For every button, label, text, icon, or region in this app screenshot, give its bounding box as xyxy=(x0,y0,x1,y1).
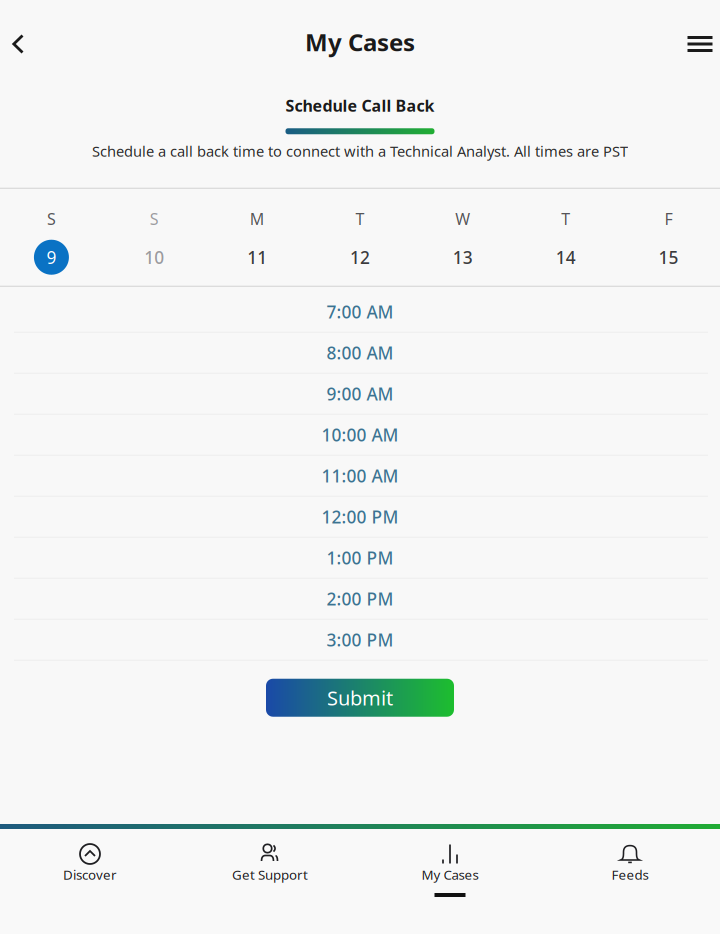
button[interactable]: Menu xyxy=(680,20,720,68)
staticText: 10:00 AM xyxy=(321,423,398,446)
button[interactable]: Back xyxy=(0,20,37,68)
button[interactable]: 1:00 PM xyxy=(0,537,720,578)
staticText: 11 xyxy=(247,246,267,269)
staticText: T xyxy=(561,208,570,229)
staticText: Feeds xyxy=(611,866,648,883)
staticText: 11:00 AM xyxy=(321,464,398,487)
staticText: W xyxy=(455,208,470,229)
staticText: My Cases xyxy=(305,26,415,58)
staticText: 9 xyxy=(46,246,56,269)
button[interactable]: T xyxy=(309,189,411,286)
staticText: Get Support xyxy=(232,866,308,883)
staticText: 8:00 AM xyxy=(326,341,393,364)
button[interactable]: 11:00 AM xyxy=(0,455,720,496)
staticText: 9:00 AM xyxy=(326,382,393,405)
button[interactable]: 12:00 PM xyxy=(0,496,720,537)
button[interactable]: Submit xyxy=(266,679,454,717)
staticText: M xyxy=(250,208,265,229)
button[interactable]: 2:00 PM xyxy=(0,578,720,619)
button[interactable]: Feeds xyxy=(540,829,720,934)
button[interactable]: 7:00 AM xyxy=(0,292,720,332)
staticText: 12:00 PM xyxy=(321,505,398,528)
button[interactable]: 10:00 AM xyxy=(0,414,720,455)
staticText: 14 xyxy=(556,246,576,269)
staticText: F xyxy=(665,208,673,229)
button[interactable]: Get Support xyxy=(180,829,360,934)
button[interactable]: 9:00 AM xyxy=(0,373,720,414)
button[interactable]: S xyxy=(103,189,206,286)
button[interactable]: My Cases xyxy=(360,829,540,934)
button[interactable]: S xyxy=(0,189,103,286)
staticText: 15 xyxy=(659,246,679,269)
button[interactable]: M xyxy=(206,189,309,286)
staticText: 3:00 PM xyxy=(326,628,393,651)
staticText: 12 xyxy=(350,246,370,269)
staticText: Discover xyxy=(63,866,117,883)
staticText: My Cases xyxy=(421,866,478,883)
staticText: S xyxy=(150,208,159,229)
button[interactable]: W xyxy=(411,189,514,286)
staticText: 1:00 PM xyxy=(326,546,393,569)
button[interactable]: F xyxy=(617,189,720,286)
staticText: Submit xyxy=(327,684,393,711)
staticText: 2:00 PM xyxy=(326,587,393,610)
staticText: 10 xyxy=(144,246,164,269)
staticText: Schedule Call Back xyxy=(285,95,434,116)
button[interactable]: Discover xyxy=(0,829,180,934)
button[interactable]: 8:00 AM xyxy=(0,332,720,373)
staticText: 7:00 AM xyxy=(326,300,393,323)
staticText: 13 xyxy=(453,246,473,269)
button[interactable]: T xyxy=(514,189,617,286)
staticText: S xyxy=(47,208,56,229)
button[interactable]: 3:00 PM xyxy=(0,619,720,660)
staticText: Schedule a call back time to connect wit… xyxy=(92,141,628,161)
staticText: T xyxy=(355,208,364,229)
